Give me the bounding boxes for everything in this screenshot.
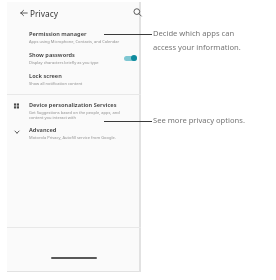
button[interactable]: Device personalization Services (7, 100, 141, 121)
staticText: Show passwords (29, 51, 75, 59)
staticText: Display characters briefly as you type (29, 60, 99, 65)
staticText: See more privacy options. (153, 115, 275, 125)
staticText: Get Suggestions based on the people, app… (29, 110, 135, 120)
button[interactable]: Back (18, 7, 30, 19)
staticText: Lock screen (29, 72, 62, 80)
staticText: Device personalization Services (29, 101, 117, 109)
button[interactable]: Search (132, 7, 143, 18)
button[interactable]: Show passwords (7, 49, 141, 67)
button[interactable]: Permission manager (7, 28, 141, 46)
button[interactable]: Advanced (7, 125, 141, 141)
staticText: Decide which apps can access your inform… (153, 28, 275, 52)
staticText: Privacy (30, 8, 59, 19)
button[interactable]: Lock screen (7, 70, 141, 88)
staticText: Apps using Microphone, Contacts, and Cal… (29, 39, 120, 44)
staticText: Show all notification content (29, 81, 83, 86)
staticText: Motorola Privacy, Autofill service from … (29, 135, 116, 140)
staticText: Permission manager (29, 30, 87, 38)
staticText: Advanced (29, 126, 57, 134)
